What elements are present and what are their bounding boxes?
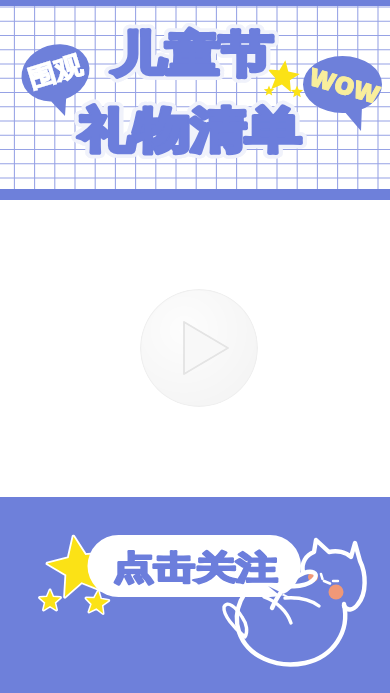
button[interactable]: WOW <box>303 54 385 114</box>
button[interactable]: 点击关注 <box>88 535 301 597</box>
button[interactable]: Play video <box>140 289 258 407</box>
button[interactable]: 围观 <box>18 43 92 105</box>
